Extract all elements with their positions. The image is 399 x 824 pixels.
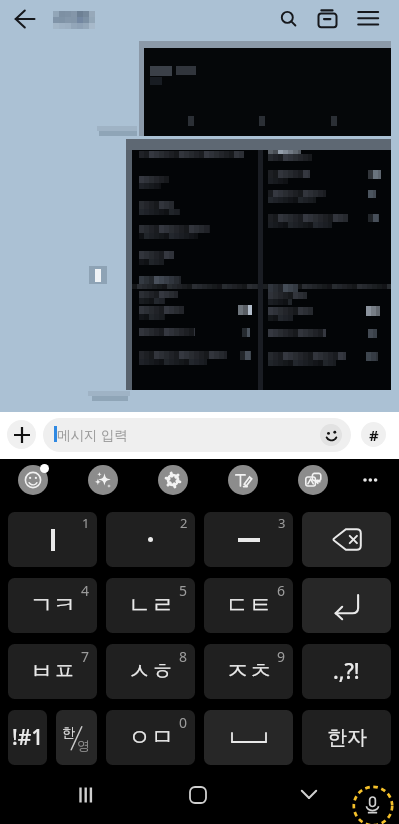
button[interactable]: ㅇㅁ xyxy=(106,710,195,765)
button[interactable]: Backspace xyxy=(302,512,391,567)
button[interactable]: Settings xyxy=(158,465,188,495)
button[interactable] xyxy=(126,139,391,390)
button[interactable]: Translate xyxy=(298,465,328,495)
button[interactable]: Archive xyxy=(310,0,350,40)
staticText: 한자 xyxy=(327,725,367,750)
staticText: .,?! xyxy=(333,657,360,686)
button[interactable]: Dot xyxy=(106,512,195,567)
staticText: 2 xyxy=(180,514,188,532)
staticText: ㅈㅊ xyxy=(226,657,272,686)
button[interactable]: Vertical stroke xyxy=(8,512,97,567)
button[interactable]: Hide keyboard xyxy=(281,776,337,813)
button[interactable]: Back xyxy=(3,0,47,40)
staticText: ㅇㅁ xyxy=(128,723,174,752)
button[interactable]: .,?! xyxy=(302,644,391,699)
button[interactable]: Hashtag xyxy=(361,422,386,447)
staticText: 영 xyxy=(77,737,90,753)
button[interactable]: Handwriting xyxy=(228,465,258,495)
button[interactable]: ㅅㅎ xyxy=(106,644,195,699)
button[interactable]: Emoji xyxy=(18,465,48,495)
staticText: 5 xyxy=(179,581,188,600)
button[interactable]: Enter xyxy=(302,578,391,633)
button[interactable]: Home xyxy=(169,776,226,813)
button[interactable]: Search xyxy=(268,0,308,40)
button[interactable]: Language xyxy=(56,710,97,765)
staticText: 8 xyxy=(179,647,188,666)
button[interactable]: More options xyxy=(357,465,388,495)
button[interactable]: 메시지 입력 xyxy=(43,418,351,452)
button[interactable]: !#1 xyxy=(8,710,47,765)
button[interactable]: Add attachment xyxy=(7,420,36,449)
button[interactable]: Horizontal stroke xyxy=(204,512,293,567)
staticText: ㅅㅎ xyxy=(128,657,174,686)
button[interactable]: ㄷㅌ xyxy=(204,578,293,633)
button[interactable] xyxy=(45,6,103,34)
staticText: 한 xyxy=(62,724,75,740)
staticText: ㄱㅋ xyxy=(30,591,76,620)
button[interactable]: 한자 xyxy=(302,710,391,765)
button[interactable]: ㅈㅊ xyxy=(204,644,293,699)
button[interactable] xyxy=(139,41,391,136)
staticText: 4 xyxy=(81,581,90,600)
staticText: ㅂㅍ xyxy=(30,657,76,686)
staticText: 3 xyxy=(278,514,286,532)
staticText: 1 xyxy=(82,514,90,532)
button[interactable]: ㅂㅍ xyxy=(8,644,97,699)
button[interactable]: Emoji xyxy=(320,424,342,446)
staticText: 메시지 입력 xyxy=(57,426,129,444)
staticText: # xyxy=(369,425,379,445)
staticText: 6 xyxy=(277,581,286,600)
staticText: 9 xyxy=(277,647,286,666)
button[interactable]: Recent apps xyxy=(57,776,113,813)
button[interactable]: Voice input xyxy=(352,785,393,824)
staticText: 7 xyxy=(81,647,90,666)
button[interactable]: Menu xyxy=(348,0,388,40)
button[interactable]: Space xyxy=(204,710,293,765)
staticText: ㄴㄹ xyxy=(128,591,174,620)
button[interactable]: AI effects xyxy=(88,465,118,495)
staticText: !#1 xyxy=(12,723,44,752)
staticText: ㄷㅌ xyxy=(226,591,272,620)
button[interactable]: ㄴㄹ xyxy=(106,578,195,633)
button[interactable]: ㄱㅋ xyxy=(8,578,97,633)
button[interactable] xyxy=(87,264,109,286)
staticText: 0 xyxy=(179,713,188,732)
